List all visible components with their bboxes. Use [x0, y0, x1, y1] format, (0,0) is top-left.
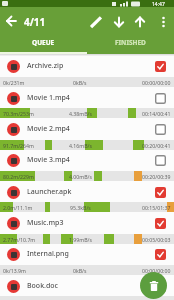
- staticText: 00:20/00:41: [142, 142, 171, 149]
- button[interactable]: [156, 14, 171, 30]
- button[interactable]: [132, 14, 148, 30]
- button[interactable]: [155, 155, 166, 166]
- button[interactable]: Internal.png: [0, 246, 174, 262]
- staticText: 00:00/00:00: [142, 267, 171, 274]
- staticText: 14:47: [152, 1, 165, 8]
- button[interactable]: [155, 249, 166, 260]
- staticText: Launcher.apk: [27, 187, 72, 197]
- staticText: 4.38mB/s: [69, 110, 92, 117]
- staticText: 91.7m/264m: [3, 142, 34, 149]
- staticText: 80.2m/229m: [3, 173, 34, 180]
- staticText: Movie 3.mp4: [27, 155, 70, 165]
- staticText: 00:00/00:00: [142, 79, 171, 86]
- staticText: 00:15/01:37: [142, 204, 171, 211]
- staticText: 2.77m/10.7m: [3, 236, 36, 243]
- button[interactable]: [4, 13, 20, 29]
- staticText: 0k/13.9m: [3, 267, 26, 274]
- staticText: 0kB/s: [73, 267, 87, 274]
- staticText: 0k/231m: [3, 79, 25, 86]
- staticText: 00:05/00:03: [142, 236, 171, 243]
- button[interactable]: FINISHED: [87, 31, 174, 54]
- staticText: Movie 1.mp4: [27, 93, 70, 103]
- staticText: FINISHED: [115, 38, 146, 47]
- staticText: Movie 2.mp4: [27, 124, 70, 134]
- button[interactable]: [88, 14, 104, 30]
- button[interactable]: Movie 2.mp4: [0, 121, 174, 137]
- staticText: 70.3m/253m: [3, 110, 34, 117]
- button[interactable]: [155, 61, 166, 72]
- staticText: 00:20/00:39: [142, 173, 171, 180]
- button[interactable]: Launcher.apk: [0, 184, 174, 200]
- staticText: QUEUE: [32, 38, 55, 47]
- staticText: Archive.zip: [27, 61, 64, 71]
- staticText: 95.3kB/s: [70, 204, 91, 211]
- staticText: Internal.png: [27, 249, 69, 259]
- button[interactable]: [155, 124, 166, 135]
- staticText: 4.00mB/s: [69, 173, 92, 180]
- staticText: Music.mp3: [27, 218, 64, 228]
- button[interactable]: Movie 1.mp4: [0, 90, 174, 106]
- button[interactable]: [111, 14, 127, 30]
- staticText: 4.16mB/s: [69, 142, 92, 149]
- button[interactable]: [155, 93, 166, 104]
- button[interactable]: Music.mp3: [0, 215, 174, 231]
- button[interactable]: [155, 187, 166, 198]
- staticText: Book.doc: [27, 281, 59, 291]
- staticText: 2.0m/11.1m: [3, 204, 33, 211]
- staticText: 00:14/00:41: [142, 110, 171, 117]
- staticText: 1.99mB/s: [69, 236, 92, 243]
- button[interactable]: Movie 3.mp4: [0, 152, 174, 168]
- button[interactable]: [140, 272, 167, 299]
- button[interactable]: [155, 218, 166, 229]
- staticText: 0kB/s: [73, 79, 87, 86]
- button[interactable]: Archive.zip: [0, 58, 174, 74]
- staticText: 00:01/00:00: [142, 298, 171, 300]
- button[interactable]: Book.doc: [0, 278, 174, 294]
- button[interactable]: [155, 281, 166, 292]
- button[interactable]: QUEUE: [0, 31, 87, 54]
- staticText: 4/11: [24, 15, 46, 29]
